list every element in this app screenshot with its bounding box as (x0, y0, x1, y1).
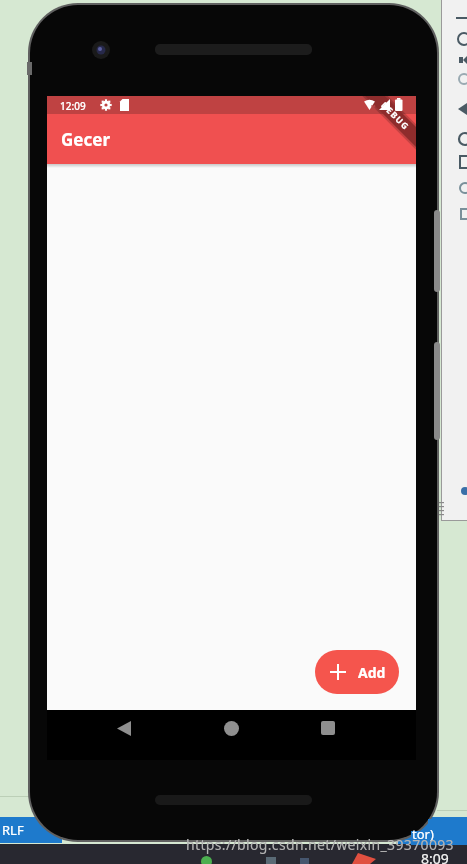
staticText: RLF (2, 821, 24, 839)
staticText: https://blog.csdn.net/weixin_39370093 (186, 835, 454, 854)
staticText: DEBUG (378, 99, 412, 133)
button[interactable] (439, 8, 467, 26)
staticText: Gecer (61, 128, 110, 151)
button[interactable] (439, 130, 467, 148)
button[interactable] (439, 51, 467, 69)
button[interactable] (439, 179, 467, 197)
button[interactable] (439, 100, 467, 118)
button[interactable] (439, 205, 467, 223)
button[interactable]: Add (315, 650, 399, 694)
staticText: Add (358, 663, 386, 682)
button[interactable] (439, 70, 467, 88)
button[interactable] (117, 721, 131, 736)
staticText: 12:09 (60, 99, 86, 113)
button[interactable] (224, 721, 239, 736)
staticText: tor) (412, 825, 434, 843)
button[interactable] (321, 721, 335, 735)
button[interactable] (439, 153, 467, 171)
staticText: 8:09 (421, 849, 449, 864)
button[interactable] (439, 30, 467, 48)
